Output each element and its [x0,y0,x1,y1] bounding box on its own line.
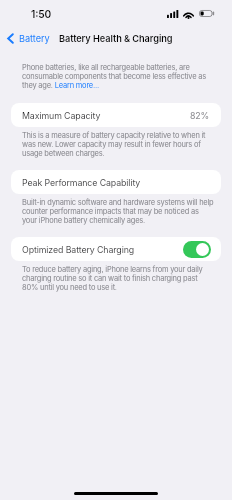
staticText: Peak Performance Capability [22,177,141,188]
staticText: This is a measure of battery capacity re… [22,131,214,158]
button[interactable]: Peak Performance Capability [11,170,221,194]
staticText: 1:50 [31,8,52,20]
staticText: Battery Health & Charging [59,33,173,44]
staticText: Phone batteries, like all rechargeable b… [22,63,214,90]
staticText: Built-in dynamic software and hardware s… [22,198,214,225]
staticText: Battery [19,33,50,44]
button[interactable]: Optimized Battery Charging toggle, on [183,241,211,258]
staticText: To reduce battery aging, iPhone learns f… [22,265,214,292]
button[interactable]: Optimized Battery Charging [11,237,221,261]
other: Home indicator [74,492,158,495]
staticText: 82% [190,110,210,121]
staticText: Maximum Capacity [22,110,101,121]
staticText: Optimized Battery Charging [22,244,135,255]
button[interactable]: Battery [0,33,54,44]
button[interactable]: Maximum Capacity [11,103,221,127]
